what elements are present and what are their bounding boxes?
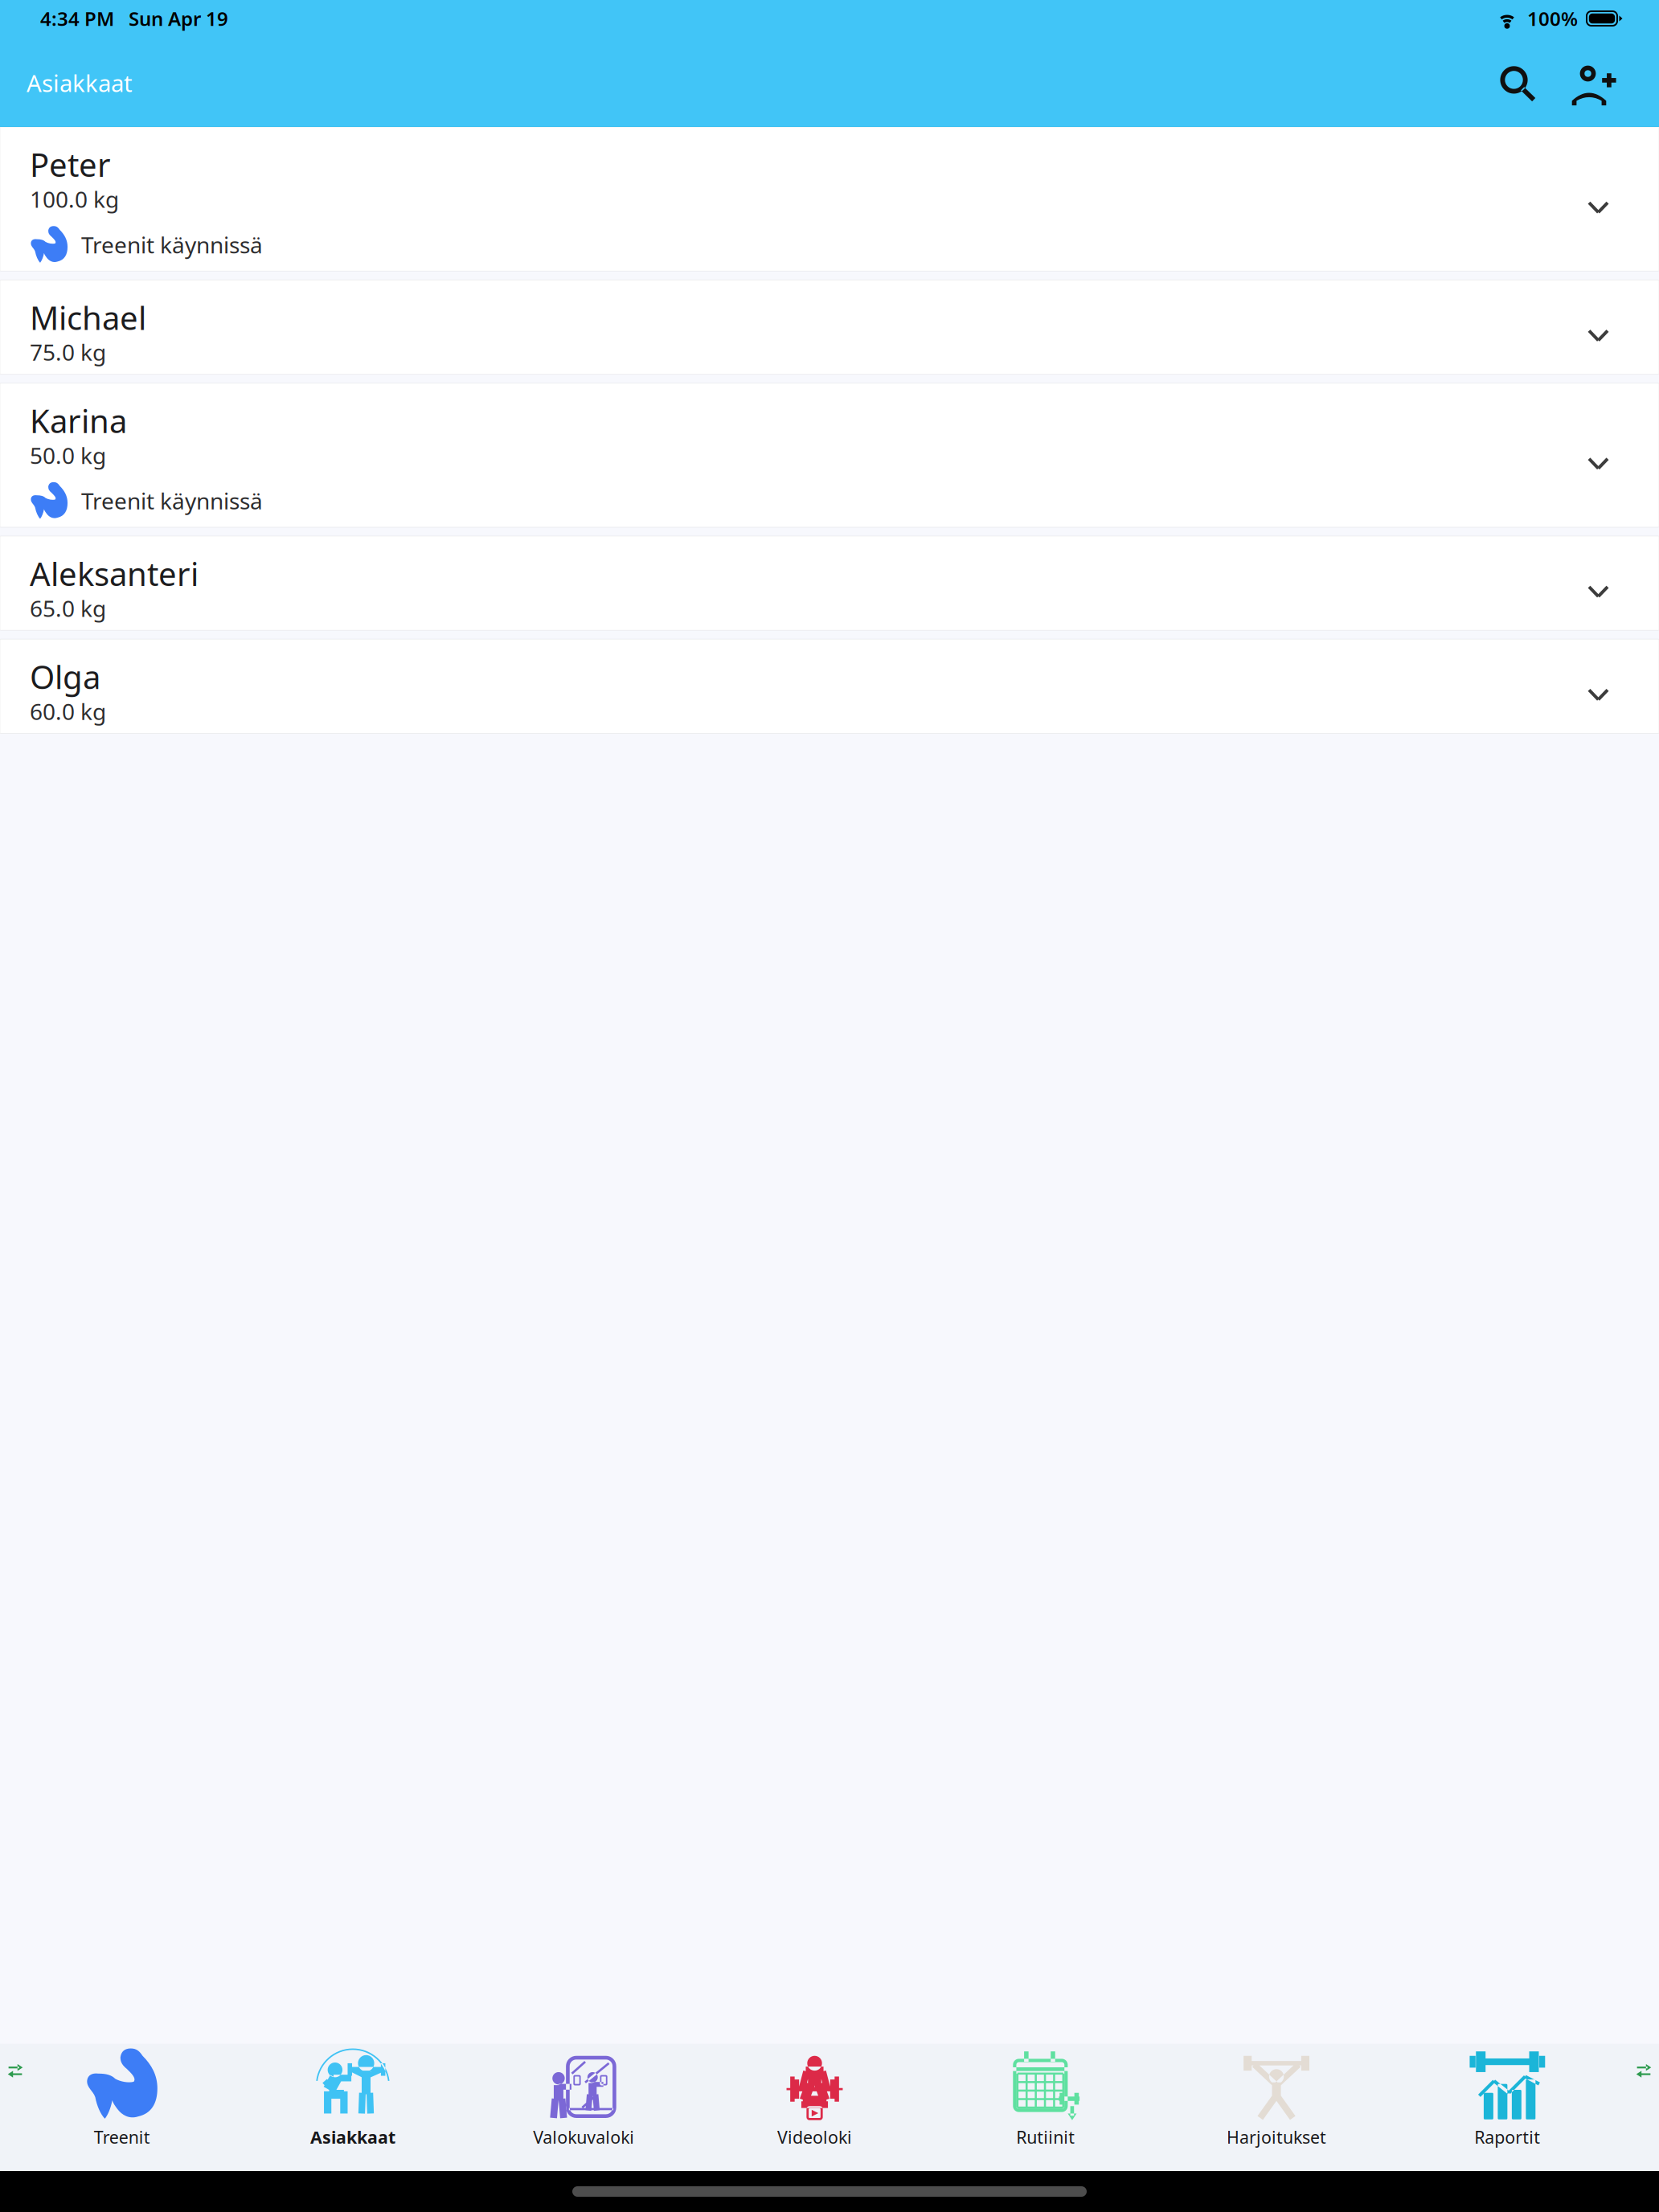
button[interactable]: Videoloki <box>699 2047 930 2149</box>
button[interactable]: Olga <box>0 639 1659 733</box>
staticText: Asiakkaat <box>310 2126 395 2149</box>
button[interactable]: Rutiinit <box>930 2047 1161 2149</box>
staticText: 60.0 kg <box>30 696 106 726</box>
staticText: 75.0 kg <box>30 337 106 367</box>
staticText: Rutiinit <box>1016 2126 1075 2149</box>
staticText: Harjoitukset <box>1227 2126 1326 2149</box>
staticText: 100.0 kg <box>30 184 119 214</box>
button[interactable]: Raportit <box>1392 2047 1623 2149</box>
staticText: Olga <box>30 655 100 698</box>
button[interactable]: Michael <box>0 280 1659 374</box>
button[interactable]: Treenit <box>6 2047 237 2149</box>
button[interactable]: Aleksanteri <box>0 536 1659 630</box>
staticText: Aleksanteri <box>30 552 199 595</box>
staticText: Treenit <box>94 2126 150 2149</box>
staticText: Sun Apr 19 <box>129 6 228 31</box>
staticText: 50.0 kg <box>30 440 106 470</box>
button[interactable]: Valokuvaloki <box>468 2047 699 2149</box>
button[interactable]: Search <box>1495 62 1540 107</box>
staticText: 100% <box>1527 6 1578 31</box>
staticText: 4:34 PM <box>40 6 114 31</box>
staticText: Valokuvaloki <box>533 2126 634 2149</box>
staticText: Michael <box>30 296 146 339</box>
staticText: Karina <box>30 399 127 442</box>
button[interactable]: Asiakkaat <box>237 2047 468 2149</box>
button[interactable]: Peter <box>0 127 1659 271</box>
staticText: Asiakkaat <box>27 67 133 98</box>
staticText: 65.0 kg <box>30 593 106 623</box>
button[interactable]: Add client <box>1570 60 1618 109</box>
staticText: Peter <box>30 143 111 186</box>
staticText: Videoloki <box>777 2126 852 2149</box>
staticText: Treenit käynnissä <box>81 486 263 516</box>
staticText: Raportit <box>1474 2126 1540 2149</box>
staticText: Treenit käynnissä <box>81 230 263 260</box>
button[interactable]: Harjoitukset <box>1161 2047 1392 2149</box>
button[interactable]: Karina <box>0 383 1659 527</box>
